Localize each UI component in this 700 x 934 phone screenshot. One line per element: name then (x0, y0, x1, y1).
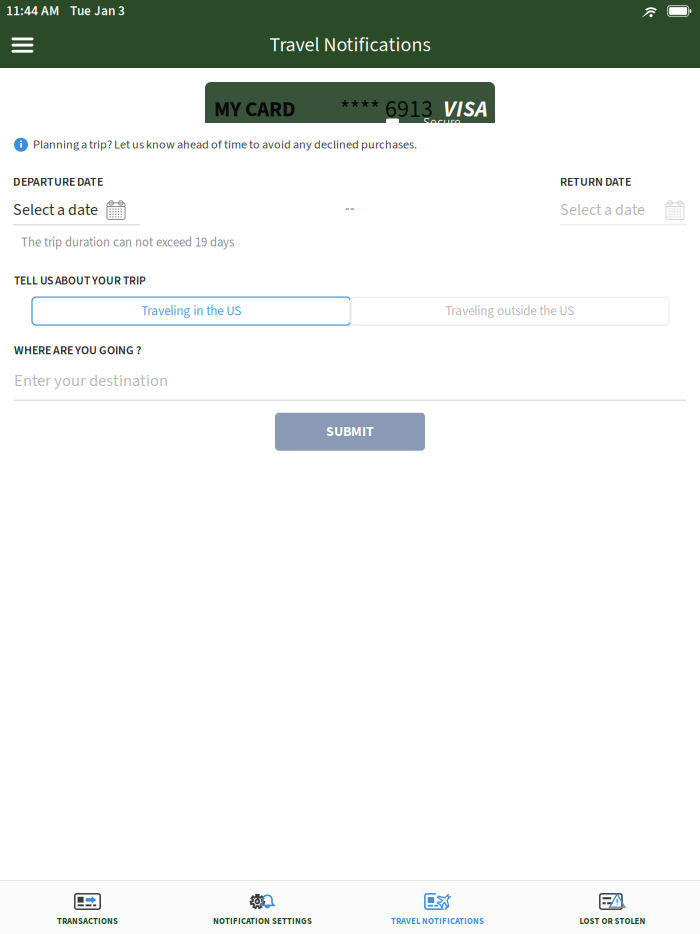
staticText: DEPARTURE DATE (13, 173, 103, 191)
staticText: TRANSACTIONS (57, 915, 118, 927)
staticText: -- (345, 197, 355, 218)
staticText: Enter your destination (14, 369, 168, 393)
staticText: Traveling in the US (141, 302, 241, 320)
staticText: Secure (423, 113, 461, 132)
button[interactable]: SUBMIT (275, 413, 425, 451)
button[interactable]: LOST OR STOLEN (525, 881, 700, 934)
button[interactable]: NOTIFICATION SETTINGS (175, 881, 350, 934)
staticText: SUBMIT (326, 422, 374, 442)
staticText: NOTIFICATION SETTINGS (213, 915, 312, 927)
staticText: Traveling outside the US (445, 302, 574, 320)
button[interactable]: Traveling outside the US (350, 297, 669, 325)
staticText: 11:44 AM (6, 1, 59, 21)
staticText: Select a date (560, 199, 645, 221)
staticText: RETURN DATE (560, 173, 631, 191)
button[interactable]: Traveling in the US (32, 297, 350, 325)
staticText: The trip duration can not exceed 19 days (21, 233, 234, 251)
staticText: LOST OR STOLEN (579, 915, 645, 927)
staticText: Planning a trip? Let us know ahead of ti… (33, 136, 417, 153)
staticText: WHERE ARE YOU GOING ? (14, 342, 141, 359)
staticText: TELL US ABOUT YOUR TRIP (14, 273, 146, 289)
staticText: Select a date (13, 199, 98, 221)
staticText: MY CARD (214, 94, 296, 125)
staticText: Travel Notifications (269, 31, 430, 59)
button[interactable]: Select return date (560, 191, 687, 225)
staticText: **** 6913 (340, 92, 433, 127)
staticText: VISA (443, 93, 487, 126)
button[interactable]: Menu (0, 22, 45, 68)
button[interactable]: TRANSACTIONS (0, 881, 175, 934)
staticText: TRAVEL NOTIFICATIONS (391, 915, 484, 927)
button[interactable]: Select departure date (13, 191, 140, 225)
staticText: Tue Jan 3 (70, 1, 125, 20)
button[interactable]: TRAVEL NOTIFICATIONS (350, 881, 525, 934)
